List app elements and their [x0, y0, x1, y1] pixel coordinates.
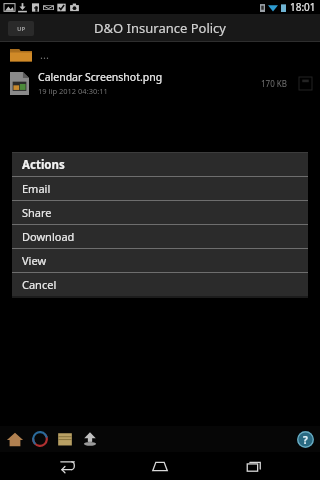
button[interactable]: Calendar Screenshot.png [0, 67, 320, 99]
button[interactable]: Home [6, 430, 24, 448]
button[interactable]: Refresh [31, 430, 49, 448]
button[interactable]: ... [0, 42, 320, 67]
button[interactable]: View [12, 249, 308, 272]
staticText: ? [303, 433, 308, 447]
staticText: D&O Insurance Policy [94, 19, 226, 37]
staticText: Email [22, 181, 51, 196]
staticText: 18:01 [290, 0, 316, 14]
staticText: Actions [22, 157, 65, 173]
staticText: 19 lip 2012 04:30:11 [38, 86, 108, 96]
staticText: UP [17, 25, 26, 33]
button[interactable]: Back [38, 453, 94, 479]
button[interactable]: Folder [56, 430, 74, 448]
button[interactable]: Up [8, 21, 34, 36]
staticText: Cancel [22, 277, 57, 292]
staticText: ... [40, 47, 49, 62]
staticText: 170 KB [261, 78, 287, 89]
staticText: View [22, 253, 47, 268]
button[interactable]: Email [12, 177, 308, 200]
button[interactable]: Home [132, 453, 188, 479]
button[interactable]: Share [12, 201, 308, 224]
other: More [299, 77, 312, 90]
button[interactable]: Cancel [12, 273, 308, 296]
staticText: Calendar Screenshot.png [38, 70, 163, 84]
button[interactable]: Upload [81, 430, 99, 448]
staticText: Share [22, 205, 52, 220]
button[interactable]: Help [297, 431, 314, 448]
staticText: Download [22, 229, 75, 244]
button[interactable]: Download [12, 225, 308, 248]
button[interactable]: Recents [226, 453, 282, 479]
